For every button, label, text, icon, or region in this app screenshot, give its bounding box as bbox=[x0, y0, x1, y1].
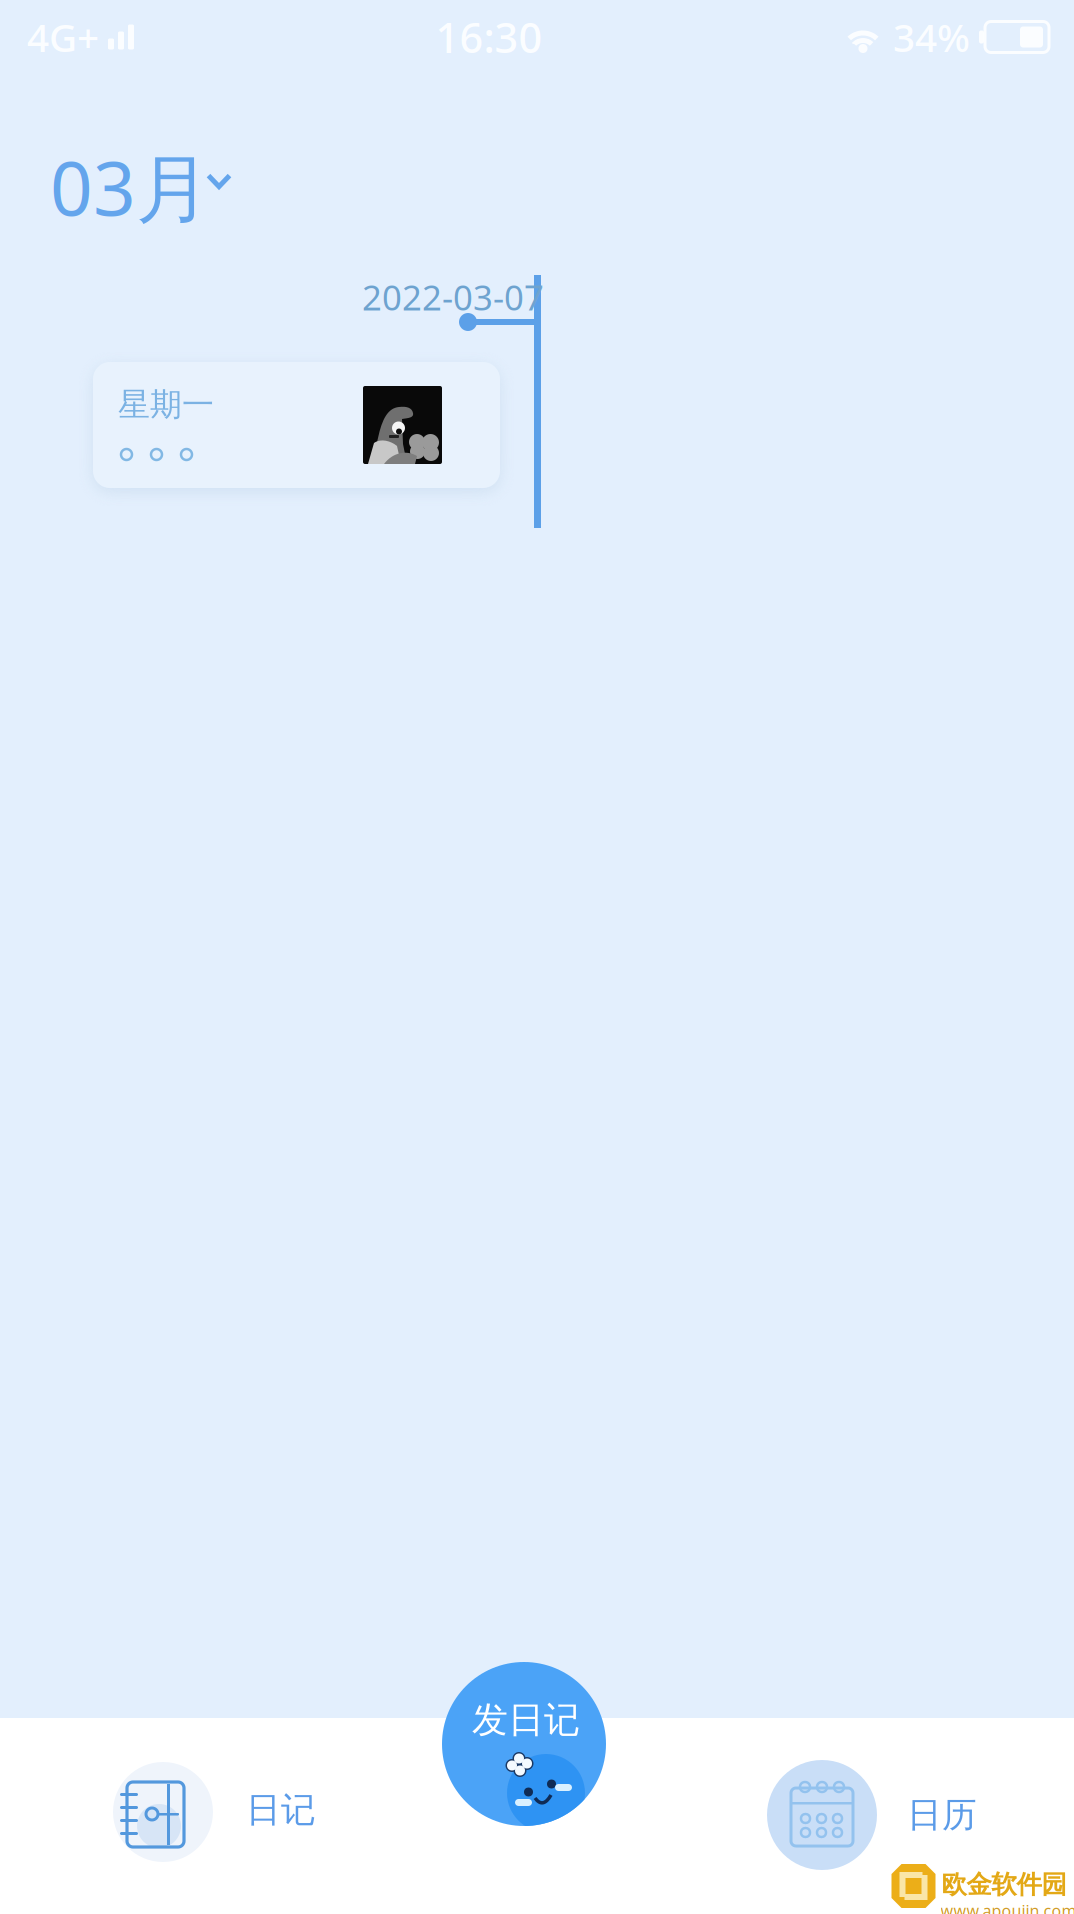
button[interactable]: 日记 bbox=[103, 1740, 322, 1880]
button[interactable]: 发日记 bbox=[440, 1662, 608, 1826]
staticText: 16:30 bbox=[435, 10, 542, 64]
staticText: 星期一 bbox=[118, 385, 214, 424]
staticText: 日历 bbox=[907, 1794, 977, 1836]
staticText: 2022-03-07 bbox=[362, 274, 544, 320]
staticText: www.apoujin.com bbox=[940, 1900, 1074, 1914]
staticText: 03月 bbox=[50, 137, 211, 236]
staticText: 34% bbox=[893, 11, 970, 63]
staticText: 欧金软件园 bbox=[941, 1869, 1066, 1900]
button[interactable]: 日历 bbox=[761, 1744, 983, 1886]
button[interactable]: 03月 bbox=[50, 137, 237, 236]
button[interactable]: 星期一 bbox=[93, 362, 500, 488]
staticText: 发日记 bbox=[472, 1698, 580, 1742]
staticText: 日记 bbox=[246, 1789, 316, 1831]
staticText: 4G+ bbox=[27, 11, 99, 63]
